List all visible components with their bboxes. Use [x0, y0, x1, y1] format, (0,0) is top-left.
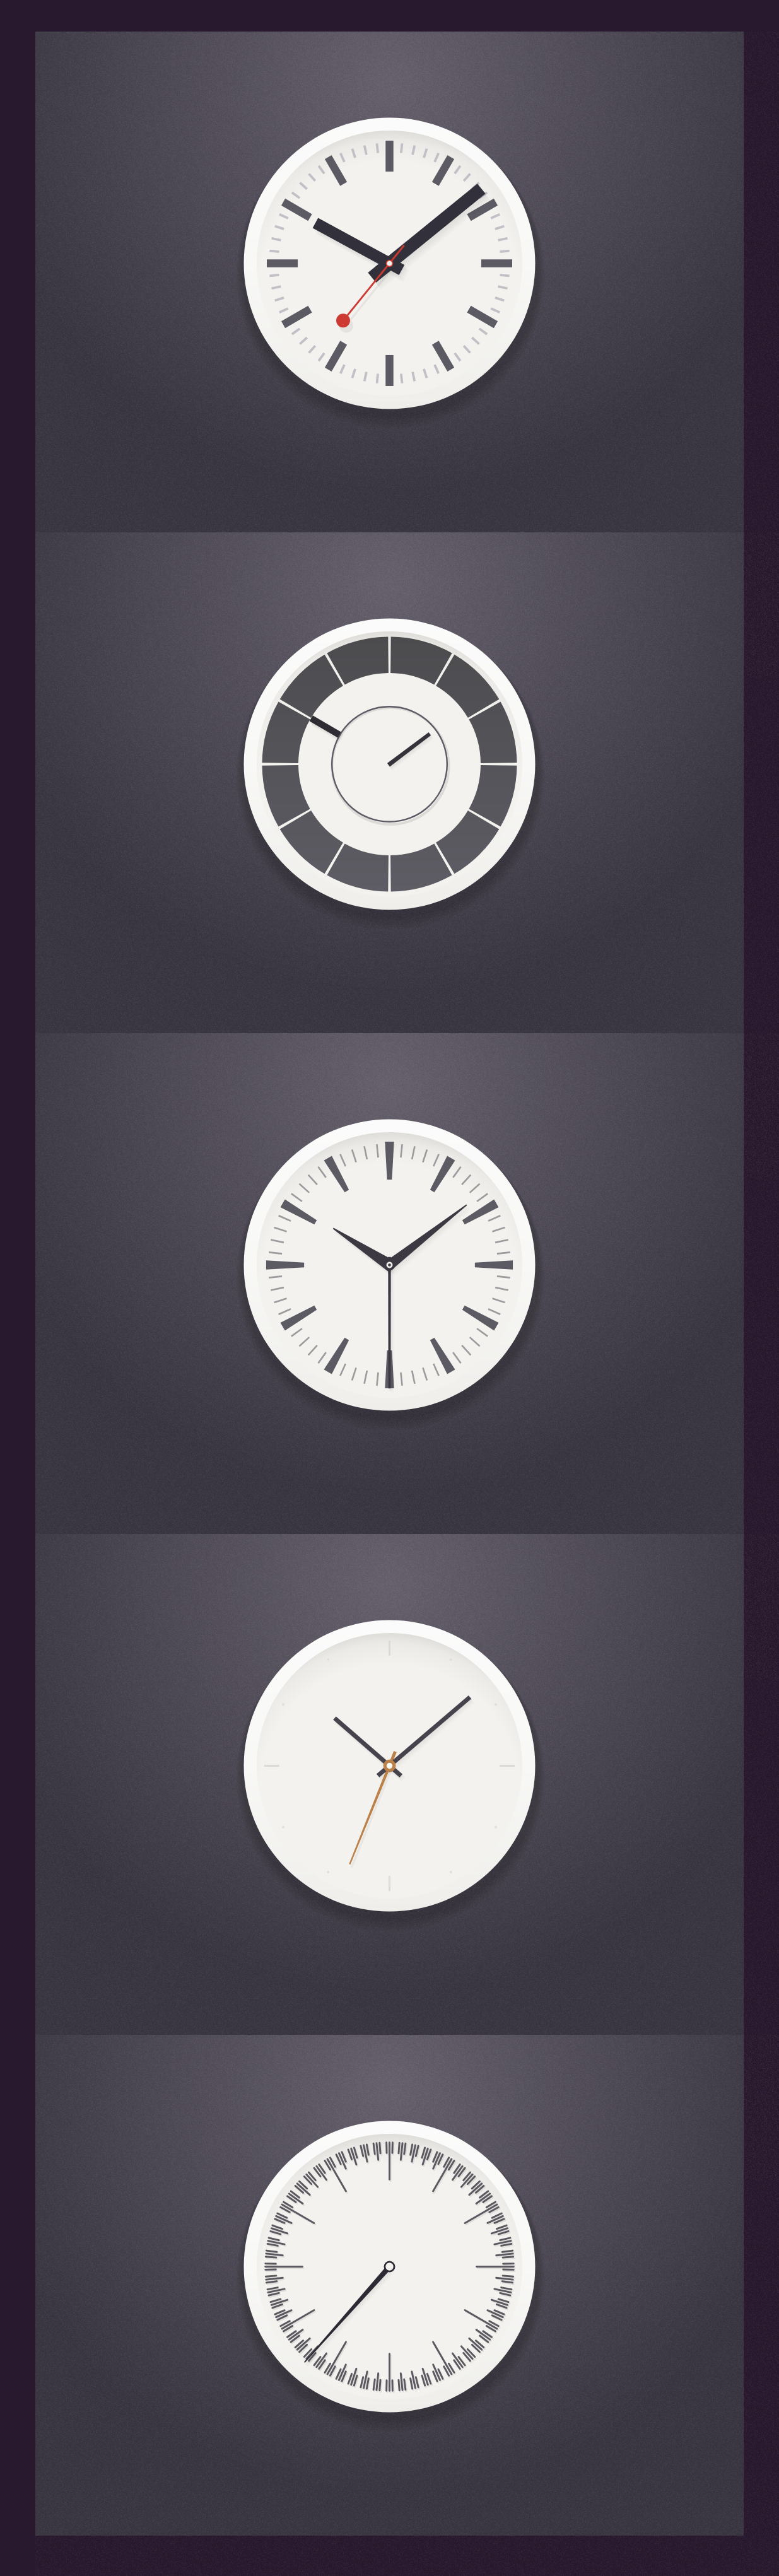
button[interactable]: Wall clock design 1: [35, 32, 744, 532]
button[interactable]: Wall clock design 3: [35, 1033, 744, 1534]
button[interactable]: Wall clock design 5: [35, 2035, 744, 2536]
button[interactable]: Wall clock design 2: [35, 532, 744, 1033]
button[interactable]: Wall clock design 4: [35, 1534, 744, 2035]
